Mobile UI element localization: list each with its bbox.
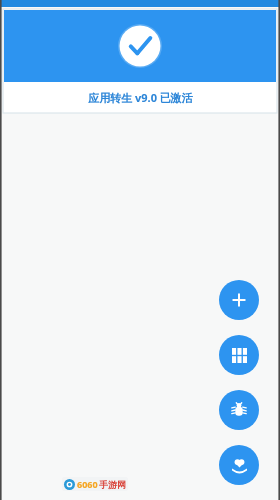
button[interactable]: Apps grid [219, 335, 259, 375]
staticText: 应用转生 v9.0 已激活 [88, 90, 193, 105]
button[interactable]: Donate [219, 445, 259, 485]
staticText: 手游网 [99, 479, 126, 490]
button[interactable]: Add [219, 280, 259, 320]
button[interactable]: Debug [219, 390, 259, 430]
button[interactable]: 应用转生 v9.0 已激活 [4, 82, 276, 112]
staticText: 6060 [77, 478, 98, 490]
